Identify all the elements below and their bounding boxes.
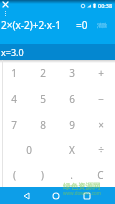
- button[interactable]: Home: [49, 189, 63, 203]
- staticText: 00:38: [98, 2, 113, 9]
- staticText: 6: [69, 92, 75, 106]
- staticText: ): [41, 168, 44, 182]
- staticText: 8: [40, 118, 46, 132]
- button[interactable]: Close: [0, 0, 11, 9]
- staticText: 1: [11, 66, 17, 80]
- button[interactable]: ×: [86, 112, 115, 137]
- button[interactable]: 0: [0, 137, 57, 162]
- staticText: 4: [11, 92, 17, 106]
- staticText: 2: [40, 66, 46, 80]
- button[interactable]: 5: [28, 86, 57, 112]
- button[interactable]: X: [57, 137, 86, 162]
- staticText: 2×(x-2)+2·x-1: [1, 18, 62, 32]
- staticText: C: [97, 168, 104, 182]
- staticText: www.downcc.com: [63, 190, 101, 196]
- staticText: 0: [26, 143, 32, 157]
- button[interactable]: 清除: [97, 22, 107, 28]
- staticText: (: [13, 168, 16, 182]
- button[interactable]: (: [0, 162, 28, 187]
- button[interactable]: 9: [57, 112, 86, 137]
- button[interactable]: ÷: [86, 137, 115, 162]
- button[interactable]: More options: [0, 8, 11, 19]
- button[interactable]: ): [28, 162, 57, 187]
- button[interactable]: Back: [19, 189, 33, 203]
- button[interactable]: +: [86, 60, 115, 86]
- button[interactable]: −: [86, 86, 115, 112]
- button[interactable]: 4: [0, 86, 28, 112]
- button[interactable]: Recents: [80, 189, 94, 203]
- staticText: ÷: [98, 143, 104, 157]
- staticText: −: [98, 92, 104, 106]
- button[interactable]: C: [86, 162, 115, 187]
- staticText: 5: [40, 92, 46, 106]
- staticText: X: [69, 143, 75, 157]
- button[interactable]: 7: [0, 112, 28, 137]
- staticText: ×: [98, 118, 104, 132]
- staticText: =0: [76, 18, 88, 32]
- button[interactable]: 2: [28, 60, 57, 86]
- button[interactable]: .: [57, 162, 86, 187]
- staticText: 3: [69, 66, 75, 80]
- button[interactable]: 6: [57, 86, 86, 112]
- staticText: .: [70, 168, 73, 182]
- staticText: 绿色资源网: [63, 182, 101, 191]
- staticText: 清除: [97, 22, 107, 28]
- button[interactable]: 8: [28, 112, 57, 137]
- staticText: +: [98, 66, 104, 80]
- staticText: 9: [69, 118, 75, 132]
- staticText: 7: [11, 118, 17, 132]
- button[interactable]: 1: [0, 60, 28, 86]
- button[interactable]: 3: [57, 60, 86, 86]
- staticText: x=3.0: [1, 46, 24, 58]
